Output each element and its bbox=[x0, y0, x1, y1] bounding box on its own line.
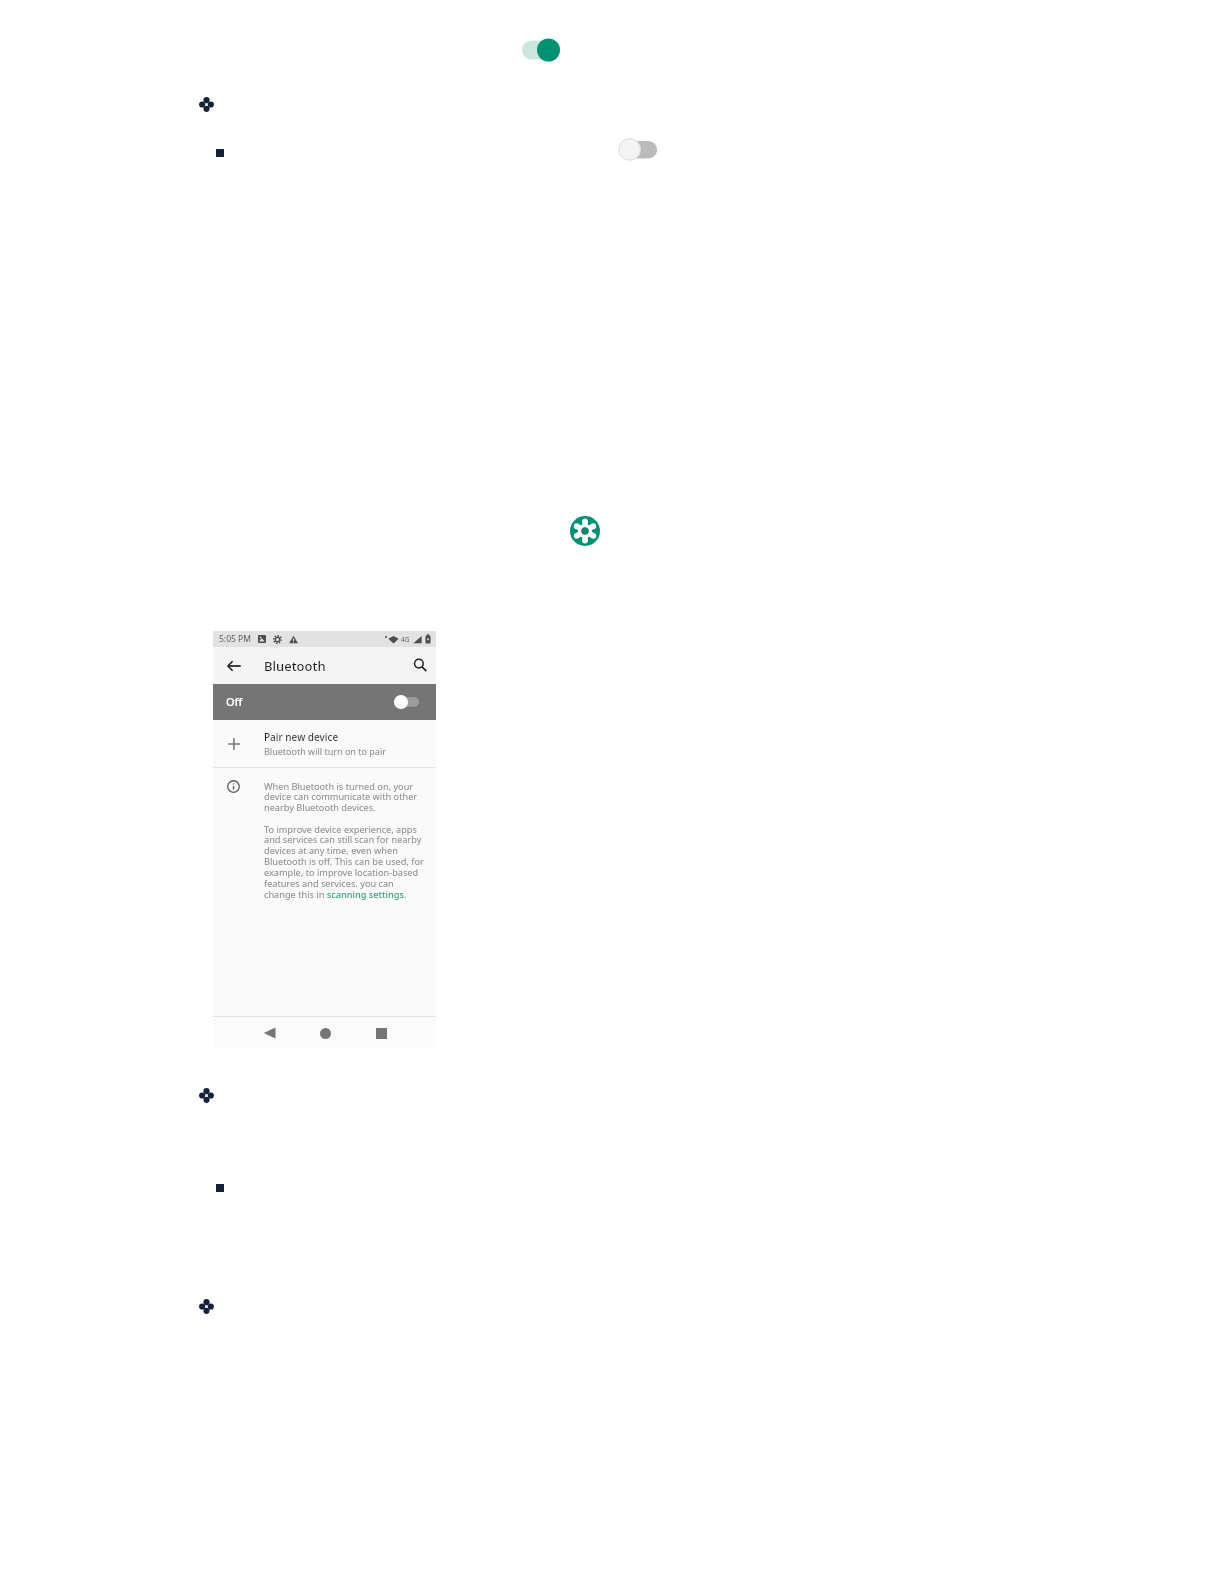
staticText: Pair new device bbox=[264, 730, 339, 744]
staticText: Bluetooth will turn on to pair bbox=[264, 745, 386, 757]
button[interactable]: Back bbox=[255, 1019, 283, 1047]
button[interactable]: Off bbox=[213, 684, 436, 720]
staticText: 5:05 PM bbox=[219, 633, 251, 645]
staticText: 4G bbox=[401, 635, 410, 644]
staticText: To improve device experience, apps and s… bbox=[264, 823, 425, 901]
button[interactable] bbox=[522, 37, 562, 63]
staticText: Bluetooth bbox=[264, 657, 326, 675]
staticText: When Bluetooth is turned on, your device… bbox=[264, 780, 425, 814]
button[interactable]: Settings bbox=[570, 516, 600, 546]
button[interactable]: Pair new device bbox=[213, 720, 436, 767]
button[interactable]: Search bbox=[398, 647, 435, 684]
button[interactable] bbox=[615, 137, 658, 162]
staticText: Off bbox=[226, 694, 243, 709]
button[interactable]: Back bbox=[213, 647, 250, 684]
button[interactable]: Recents bbox=[367, 1019, 395, 1047]
button[interactable]: Home bbox=[311, 1019, 339, 1047]
